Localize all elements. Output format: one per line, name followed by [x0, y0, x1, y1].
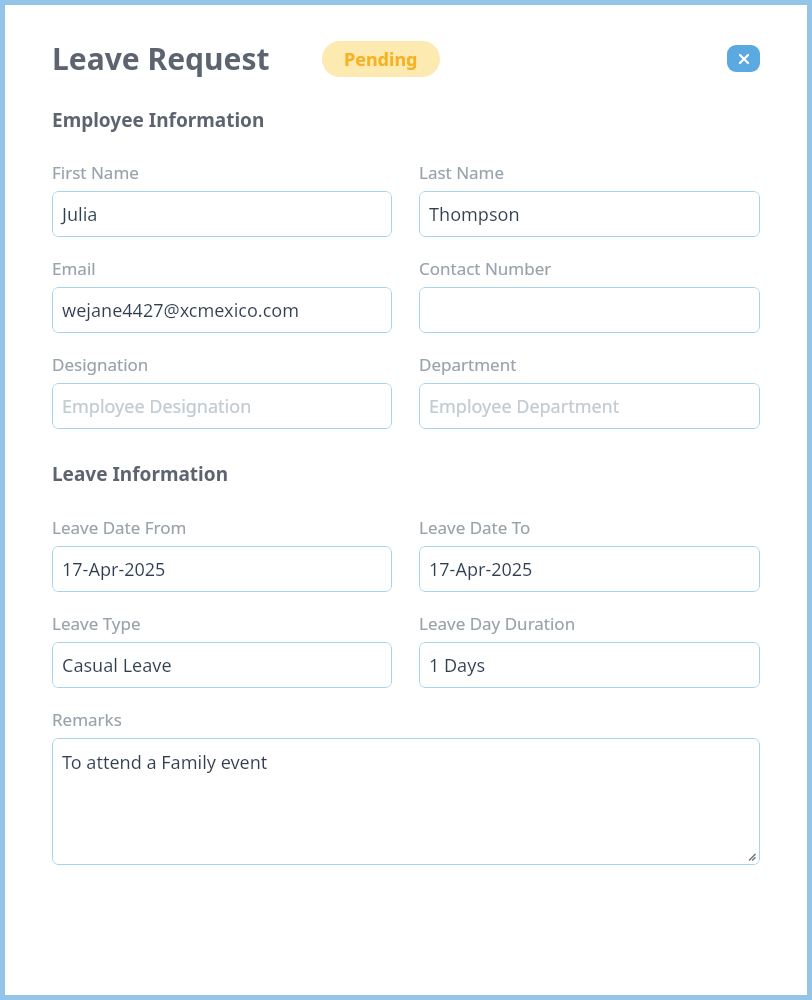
staticText: Email	[52, 257, 96, 280]
staticText: Designation	[52, 353, 149, 376]
staticText: Leave Information	[52, 461, 228, 487]
staticText: wejane4427@xcmexico.com	[62, 298, 299, 323]
staticText: Leave Request	[52, 38, 270, 79]
staticText: Leave Day Duration	[419, 612, 576, 635]
staticText: Employee Department	[429, 394, 620, 419]
staticText: Julia	[62, 202, 98, 227]
button[interactable]: wejane4427@xcmexico.com	[52, 287, 392, 333]
staticText: Employee Designation	[62, 394, 252, 419]
button[interactable]: Casual Leave	[52, 642, 392, 688]
button[interactable]: Thompson	[419, 191, 760, 237]
button[interactable]	[419, 287, 760, 333]
button[interactable]: 17-Apr-2025	[52, 546, 392, 592]
button[interactable]: Employee Department	[419, 383, 760, 429]
staticText: Last Name	[419, 161, 505, 184]
button[interactable]: Pending	[322, 41, 440, 77]
staticText: Leave Date To	[419, 516, 531, 539]
staticText: Department	[419, 353, 517, 376]
button[interactable]: Julia	[52, 191, 392, 237]
staticText: Casual Leave	[62, 653, 172, 678]
staticText: Remarks	[52, 708, 122, 731]
staticText: Employee Information	[52, 107, 265, 133]
button[interactable]: Employee Designation	[52, 383, 392, 429]
button[interactable]: To attend a Family event	[52, 738, 760, 865]
staticText: Contact Number	[419, 257, 552, 280]
staticText: 17-Apr-2025	[429, 557, 533, 582]
staticText: First Name	[52, 161, 139, 184]
button[interactable]: 17-Apr-2025	[419, 546, 760, 592]
button[interactable]: 1 Days	[419, 642, 760, 688]
staticText: Leave Type	[52, 612, 141, 635]
staticText: Leave Date From	[52, 516, 187, 539]
staticText: To attend a Family event	[62, 750, 268, 775]
button[interactable]: Close	[727, 45, 760, 72]
staticText: Pending	[344, 47, 418, 72]
staticText: Thompson	[429, 202, 520, 227]
staticText: 17-Apr-2025	[62, 557, 166, 582]
staticText: 1 Days	[429, 653, 486, 678]
